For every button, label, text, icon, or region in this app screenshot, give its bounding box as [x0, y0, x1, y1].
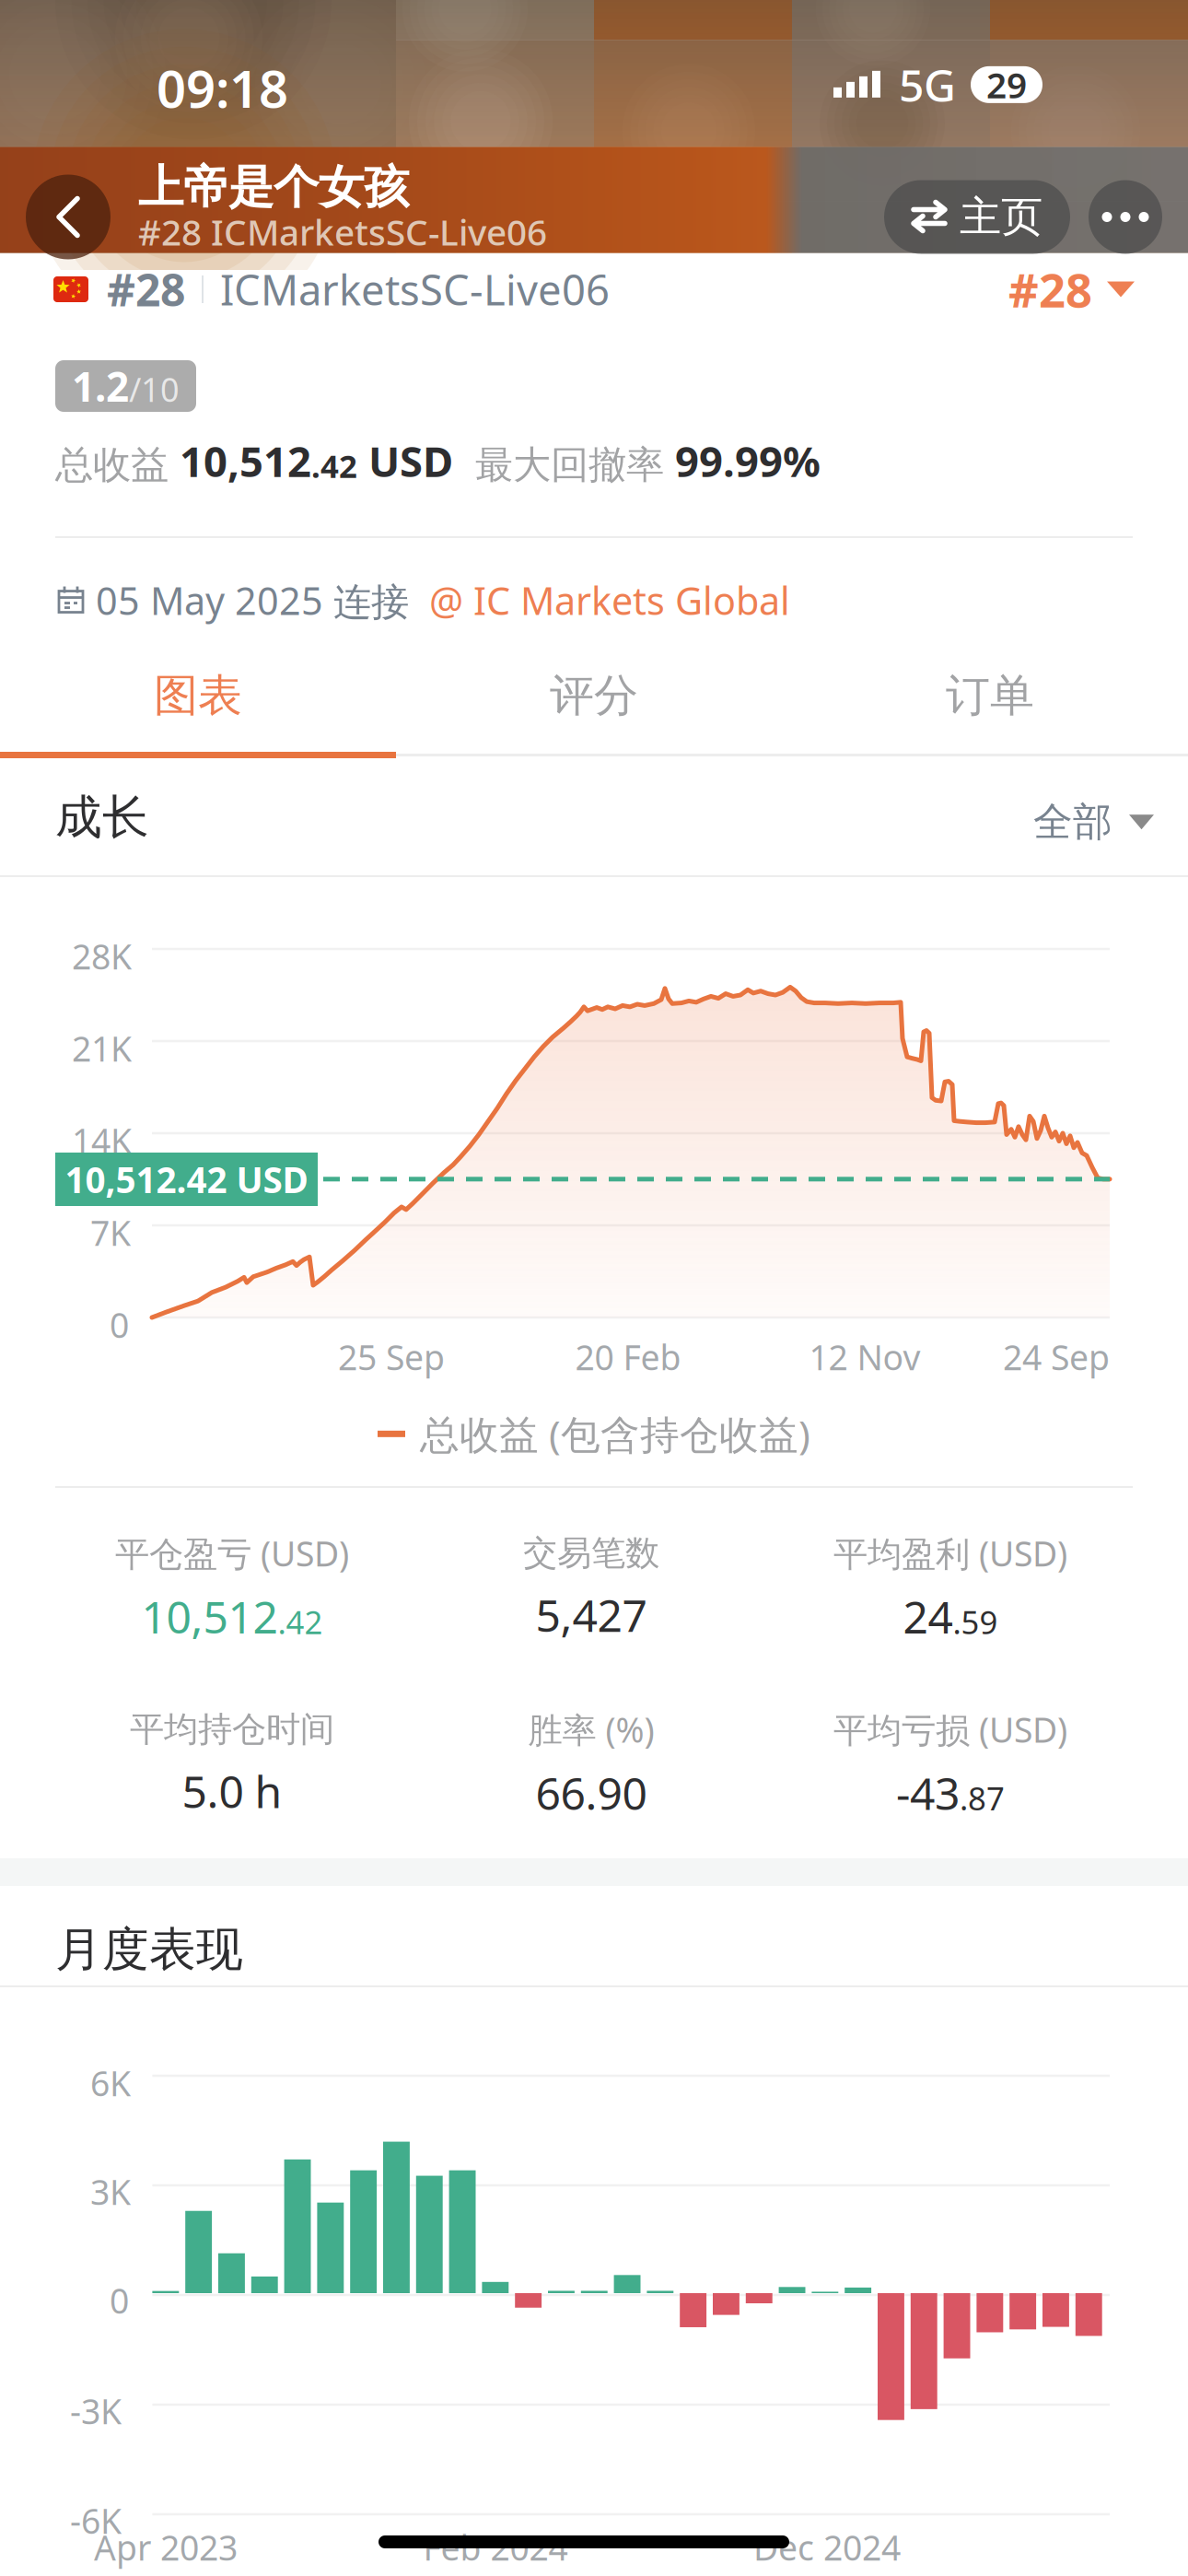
- staticText: 10,512: [141, 1587, 278, 1646]
- staticText: @ IC Markets Global: [409, 575, 790, 626]
- staticText: 14K: [72, 1118, 132, 1163]
- staticText: -6K: [70, 2498, 122, 2543]
- staticText: 主页: [960, 191, 1042, 243]
- staticText: .42: [311, 444, 357, 487]
- staticText: 月度表现: [55, 1921, 243, 1978]
- button[interactable]: 评分: [396, 645, 792, 746]
- button[interactable]: Back: [26, 175, 111, 259]
- staticText: 29: [986, 61, 1027, 108]
- staticText: 总收益 (包含持仓收益): [420, 1408, 810, 1460]
- staticText: 成长: [55, 789, 149, 846]
- staticText: 全部: [1033, 798, 1112, 846]
- staticText: 21K: [72, 1025, 132, 1071]
- staticText: 平均持仓时间: [130, 1708, 334, 1751]
- staticText: 5.0 h: [182, 1762, 282, 1820]
- staticText: 上帝是个女孩: [138, 159, 409, 215]
- staticText: Apr 2023: [94, 2524, 238, 2570]
- staticText: 5,427: [536, 1585, 647, 1644]
- button[interactable]: 全部: [1033, 798, 1154, 846]
- staticText: 平均盈利 (USD): [833, 1530, 1067, 1576]
- staticText: 胜率 (%): [528, 1707, 654, 1752]
- staticText: 10,512: [180, 433, 311, 488]
- button[interactable]: 图表: [0, 645, 396, 746]
- staticText: #28 ICMarketsSC-Live06: [138, 208, 547, 255]
- staticText: 0: [110, 1302, 129, 1348]
- staticText: 12 Nov: [809, 1334, 920, 1380]
- staticText: 3K: [90, 2169, 131, 2214]
- staticText: 评分: [550, 668, 638, 723]
- staticText: 05 May 2025 连接: [86, 575, 409, 626]
- staticText: /10: [129, 367, 180, 411]
- staticText: Dec 2024: [753, 2524, 901, 2570]
- staticText: 最大回撤率: [453, 442, 675, 488]
- staticText: 交易笔数: [523, 1532, 659, 1574]
- staticText: .59: [953, 1601, 998, 1643]
- staticText: 0: [110, 2277, 129, 2323]
- staticText: .42: [278, 1601, 323, 1643]
- staticText: 总收益: [55, 442, 180, 488]
- staticText: -3K: [70, 2388, 122, 2434]
- button[interactable]: #28: [1008, 258, 1135, 320]
- staticText: 平均亏损 (USD): [833, 1707, 1067, 1752]
- staticText: 20 Feb: [575, 1334, 681, 1380]
- button[interactable]: 主页: [884, 180, 1070, 254]
- staticText: 66.90: [536, 1763, 647, 1822]
- staticText: 7K: [90, 1210, 131, 1255]
- staticText: 09:18: [157, 53, 288, 122]
- staticText: #28: [107, 260, 185, 319]
- staticText: 图表: [154, 668, 242, 723]
- staticText: 订单: [946, 668, 1034, 723]
- staticText: 平仓盈亏 (USD): [115, 1530, 349, 1576]
- staticText: 10,512.42 USD: [65, 1156, 308, 1203]
- staticText: 24 Sep: [1003, 1334, 1110, 1380]
- staticText: 6K: [90, 2060, 131, 2106]
- staticText: .87: [960, 1777, 1005, 1819]
- button[interactable]: More: [1089, 180, 1162, 254]
- staticText: #28: [1008, 258, 1092, 320]
- staticText: 1.2: [72, 359, 129, 413]
- staticText: 24: [903, 1587, 953, 1646]
- staticText: -43: [896, 1763, 960, 1822]
- staticText: ICMarketsSC-Live06: [220, 262, 610, 317]
- button[interactable]: 订单: [792, 645, 1188, 746]
- staticText: USD: [357, 433, 453, 488]
- staticText: 5G: [899, 55, 956, 114]
- staticText: 25 Sep: [338, 1334, 445, 1380]
- staticText: 28K: [72, 933, 132, 979]
- staticText: Feb 2024: [423, 2524, 568, 2570]
- staticText: 99.99%: [675, 433, 821, 488]
